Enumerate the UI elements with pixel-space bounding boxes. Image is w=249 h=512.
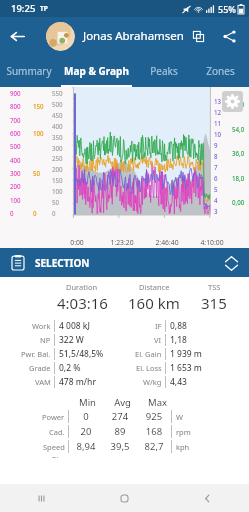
staticText: 300 xyxy=(52,144,63,152)
staticText: El. Loss xyxy=(136,363,162,373)
staticText: 150 xyxy=(52,176,63,184)
staticText: 19:25 xyxy=(11,2,36,15)
staticText: Ele. xyxy=(52,454,65,458)
button[interactable]: Zones xyxy=(192,55,249,87)
staticText: 160 km xyxy=(128,293,180,313)
staticText: 100 xyxy=(33,129,44,137)
staticText: 322 W xyxy=(59,334,84,346)
staticText: 200 xyxy=(10,182,21,190)
staticText: 4:10:00 xyxy=(195,238,229,247)
button[interactable]: Chart settings xyxy=(222,91,243,112)
staticText: 0,00 xyxy=(232,198,245,206)
staticText: 100 xyxy=(10,196,21,204)
staticText: 8,94 xyxy=(69,440,103,453)
staticText: Distance xyxy=(139,282,170,292)
staticText: 72,0 xyxy=(232,100,245,108)
staticText: rpm xyxy=(176,427,191,437)
staticText: kph xyxy=(176,442,190,452)
staticText: Min xyxy=(70,396,105,409)
staticText: 51,5/48,5% xyxy=(59,348,104,360)
staticText: W xyxy=(176,412,183,422)
staticText: 478 m/hr xyxy=(59,376,97,388)
staticText: 800 xyxy=(10,102,21,110)
staticText: 0,88 xyxy=(170,320,187,332)
staticText: Work xyxy=(32,321,51,331)
staticText: 550 xyxy=(52,89,63,97)
staticText: El. Gain xyxy=(135,349,162,359)
staticText: Avg xyxy=(105,396,140,409)
staticText: 1 653 m xyxy=(170,362,202,374)
staticText: TP xyxy=(40,4,48,13)
staticText: 9 xyxy=(214,141,218,149)
staticText: 925 xyxy=(137,410,171,423)
staticText: 4 xyxy=(214,196,218,204)
button[interactable]: Profile photo xyxy=(46,22,75,51)
staticText: 5 xyxy=(214,185,218,193)
staticText: 1:23:20 xyxy=(105,238,139,247)
staticText: 400 xyxy=(10,156,21,164)
staticText: 274 xyxy=(103,410,137,423)
staticText: IF xyxy=(155,321,162,331)
staticText: 3 xyxy=(214,207,218,215)
staticText: 450 xyxy=(52,111,63,119)
button[interactable]: Summary xyxy=(0,55,58,87)
staticText: Grade xyxy=(29,363,51,373)
button[interactable]: SELECTION xyxy=(0,248,249,277)
staticText: Summary xyxy=(6,64,52,78)
button[interactable]: Map & Graph xyxy=(58,55,135,87)
staticText: VAM xyxy=(35,377,51,387)
staticText: 900 xyxy=(10,89,21,97)
staticText: Duration xyxy=(66,282,98,292)
staticText: 500 xyxy=(52,100,63,108)
button[interactable]: Recents xyxy=(0,484,83,512)
staticText: 4,43 xyxy=(170,376,187,388)
button[interactable]: Peaks xyxy=(135,55,192,87)
button[interactable]: Back xyxy=(166,484,249,512)
staticText: 55% xyxy=(218,3,236,15)
staticText: 700 xyxy=(10,116,21,124)
button[interactable]: Share xyxy=(215,22,243,50)
staticText: 11 xyxy=(214,119,222,127)
staticText: Power xyxy=(42,412,65,422)
staticText: Jonas Abrahamsen xyxy=(83,28,184,44)
staticText: 150 xyxy=(33,102,44,110)
staticText: 0 xyxy=(10,209,14,217)
staticText: 8 xyxy=(214,152,218,160)
staticText: 350 xyxy=(52,133,63,141)
staticText: Speed xyxy=(43,442,65,452)
staticText: 54,0 xyxy=(232,125,245,133)
staticText: 315 xyxy=(201,293,227,313)
staticText: 12 xyxy=(214,108,222,116)
staticText: 4:03:16 xyxy=(57,293,108,313)
staticText: 10 xyxy=(214,130,222,138)
button[interactable]: Back xyxy=(0,19,34,53)
staticText: 36,0 xyxy=(232,149,245,157)
staticText: SELECTION xyxy=(35,256,90,270)
staticText: Map & Graph xyxy=(64,64,129,78)
staticText: 50 xyxy=(52,198,60,206)
staticText: 39,5 xyxy=(103,440,137,453)
staticText: Pwr. Bal. xyxy=(21,349,51,359)
staticText: 50 xyxy=(33,169,41,177)
staticText: VI xyxy=(154,335,162,345)
staticText: 0 xyxy=(52,209,56,217)
staticText: Cad. xyxy=(49,427,65,437)
staticText: 89 xyxy=(103,425,137,438)
staticText: 200 xyxy=(52,165,63,173)
staticText: Max xyxy=(140,396,175,409)
staticText: 13 xyxy=(214,97,222,105)
staticText: 168 xyxy=(137,425,171,438)
staticText: 250 xyxy=(52,154,63,162)
button[interactable]: Expand selection xyxy=(217,249,245,277)
staticText: 0,2 % xyxy=(59,362,81,374)
button[interactable]: Copy xyxy=(185,23,211,49)
staticText: 20 xyxy=(69,425,103,438)
staticText: 1 939 m xyxy=(170,348,202,360)
staticText: 0 xyxy=(33,209,37,217)
staticText: 600 xyxy=(10,129,21,137)
staticText: 500 xyxy=(10,142,21,150)
staticText: Peaks xyxy=(150,64,178,78)
button[interactable]: Home xyxy=(83,484,166,512)
staticText: 7 xyxy=(214,163,218,171)
staticText: 2:46:40 xyxy=(150,238,184,247)
